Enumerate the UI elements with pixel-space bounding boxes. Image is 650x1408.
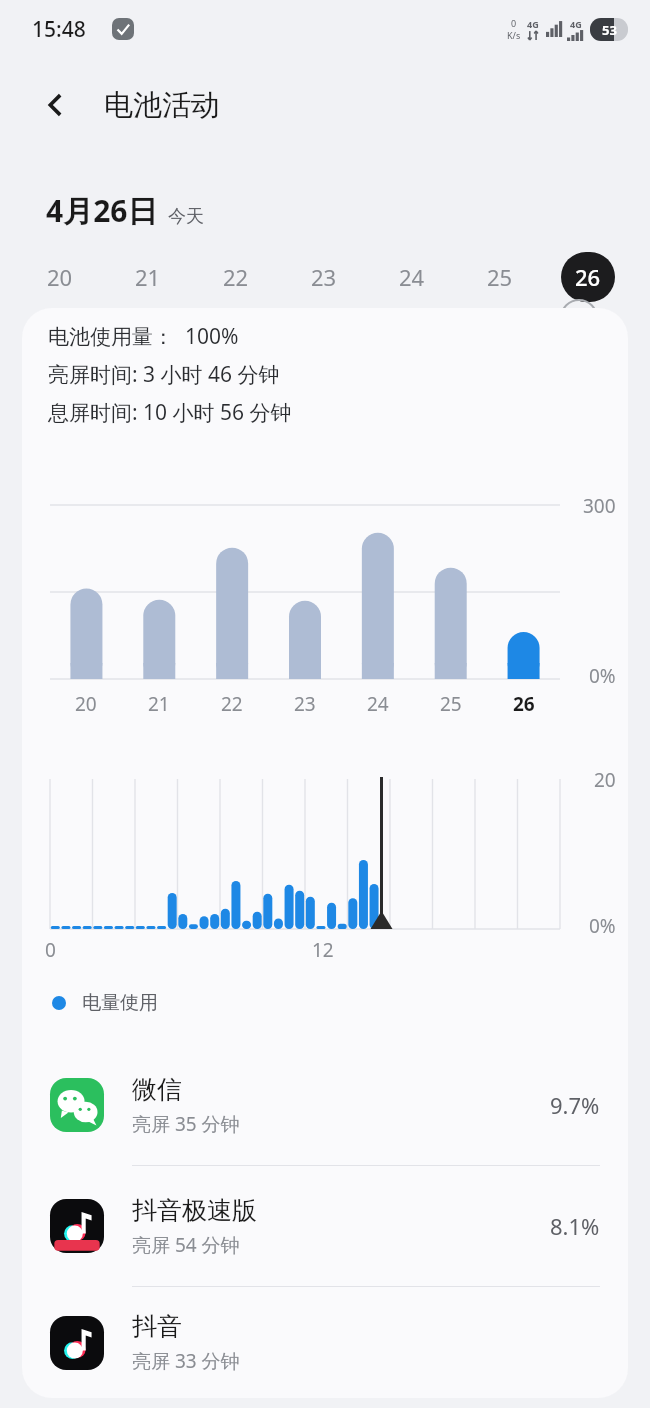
- button[interactable]: 微信: [22, 1045, 628, 1165]
- staticText: 亮屏 33 分钟: [132, 1348, 240, 1374]
- staticText: 0%: [589, 913, 616, 939]
- staticText: 26: [513, 691, 535, 717]
- staticText: 15:48: [32, 15, 86, 44]
- button[interactable]: 抖音: [22, 1287, 628, 1398]
- button[interactable]: 24: [385, 252, 439, 302]
- staticText: 26: [575, 262, 601, 292]
- staticText: 电池活动: [104, 87, 220, 124]
- staticText: 20: [47, 262, 73, 292]
- button[interactable]: 26: [561, 252, 615, 302]
- staticText: 亮屏时间: 3 小时 46 分钟: [48, 360, 280, 389]
- button[interactable]: 23: [297, 252, 351, 302]
- staticText: 25: [487, 262, 513, 292]
- staticText: 0: [511, 17, 517, 29]
- staticText: 9.7%: [550, 1090, 600, 1120]
- staticText: 20: [594, 767, 616, 793]
- staticText: 亮屏 35 分钟: [132, 1111, 240, 1137]
- staticText: 4G: [527, 18, 539, 30]
- button[interactable]: Back: [28, 77, 84, 133]
- staticText: 4月26日: [46, 190, 158, 231]
- staticText: 亮屏 54 分钟: [132, 1232, 240, 1258]
- staticText: 22: [223, 262, 249, 292]
- staticText: 8.1%: [550, 1211, 600, 1241]
- staticText: 0%: [589, 663, 616, 689]
- staticText: 22: [221, 691, 243, 717]
- staticText: K/s: [507, 29, 521, 41]
- staticText: 4G: [570, 18, 582, 30]
- staticText: 24: [367, 691, 389, 717]
- staticText: 24: [399, 262, 425, 292]
- button[interactable]: 21: [121, 252, 175, 302]
- staticText: 25: [440, 691, 462, 717]
- staticText: 今天: [168, 205, 204, 228]
- staticText: 21: [148, 691, 170, 717]
- staticText: 20: [75, 691, 97, 717]
- button[interactable]: 25: [473, 252, 527, 302]
- staticText: 12: [312, 937, 334, 963]
- staticText: 300: [583, 493, 616, 519]
- button[interactable]: 22: [209, 252, 263, 302]
- staticText: 23: [294, 691, 316, 717]
- button[interactable]: 抖音极速版: [22, 1166, 628, 1286]
- staticText: 0: [45, 937, 56, 963]
- staticText: 抖音: [132, 1311, 182, 1342]
- staticText: 微信: [132, 1074, 182, 1105]
- staticText: 电量使用: [82, 991, 158, 1015]
- staticText: 息屏时间: 10 小时 56 分钟: [48, 398, 292, 427]
- button[interactable]: 20: [33, 252, 87, 302]
- staticText: 53: [602, 21, 617, 39]
- staticText: 21: [135, 262, 161, 292]
- staticText: 23: [311, 262, 337, 292]
- staticText: 电池使用量： 100%: [48, 322, 239, 351]
- staticText: 抖音极速版: [132, 1195, 257, 1226]
